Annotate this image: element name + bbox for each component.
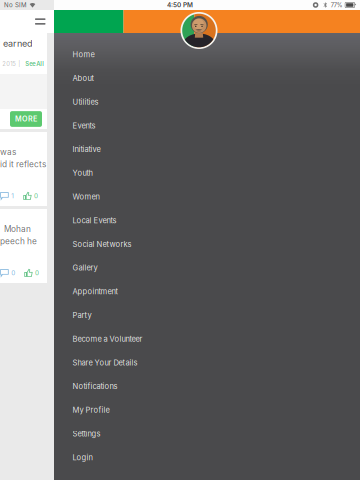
button[interactable]: Notifications (54, 374, 360, 398)
staticText: Home (72, 50, 94, 59)
button[interactable]: Events (54, 114, 360, 137)
staticText: My Profile (72, 405, 109, 415)
staticText: Events (72, 121, 95, 130)
staticText: was (0, 147, 16, 157)
button[interactable]: Local Events (54, 209, 360, 232)
staticText: 4:50 PM (167, 1, 193, 9)
button[interactable]: MORE (10, 111, 42, 127)
button[interactable]: Women (54, 185, 360, 209)
staticText: Gallery (72, 263, 97, 272)
button[interactable]: Youth (54, 161, 360, 185)
staticText: Local Events (72, 216, 116, 225)
staticText: 0 (35, 269, 39, 277)
button[interactable]: Party (54, 303, 360, 327)
staticText: Login (72, 453, 92, 462)
staticText: 2015 | (2, 60, 20, 67)
staticText: Share Your Details (72, 358, 137, 367)
staticText: 77% (331, 1, 343, 9)
button[interactable]: Social Networks (54, 232, 360, 256)
button[interactable]: Comments (0, 269, 15, 277)
staticText: Mohan (4, 224, 31, 234)
staticText: Social Networks (72, 240, 131, 249)
button[interactable]: Login (54, 446, 360, 469)
button[interactable]: Settings (54, 422, 360, 446)
button[interactable]: Initiative (54, 137, 360, 161)
button[interactable]: My Profile (54, 398, 360, 422)
button[interactable]: Home (54, 43, 360, 66)
staticText: 1 (11, 192, 14, 200)
button[interactable]: Like (23, 192, 38, 200)
staticText: See All (25, 60, 44, 67)
button[interactable]: Share Your Details (54, 351, 360, 374)
button[interactable]: About (54, 66, 360, 90)
staticText: Appointment (72, 287, 117, 296)
staticText: Notifications (72, 382, 117, 391)
staticText: MORE (15, 115, 37, 123)
staticText: About (72, 74, 93, 83)
staticText: peech he (0, 236, 37, 246)
button[interactable]: Menu (0, 10, 54, 33)
staticText: 0 (34, 192, 38, 200)
staticText: Become a Volunteer (72, 334, 142, 344)
button[interactable]: Like (24, 269, 39, 277)
button[interactable]: Appointment (54, 280, 360, 303)
staticText: Initiative (72, 145, 100, 154)
staticText: Utilities (72, 97, 98, 107)
staticText: ly earned (0, 38, 33, 49)
button[interactable]: Gallery (54, 256, 360, 280)
staticText: 0 (11, 269, 15, 277)
staticText: Women (72, 192, 99, 201)
staticText: Settings (72, 429, 100, 438)
staticText: id it reflects (0, 159, 46, 169)
staticText: No SIM (4, 1, 27, 9)
button[interactable]: Utilities (54, 90, 360, 114)
button[interactable]: Become a Volunteer (54, 327, 360, 351)
staticText: Youth (72, 168, 92, 178)
staticText: Party (72, 311, 91, 320)
button[interactable]: Comments (0, 192, 14, 200)
